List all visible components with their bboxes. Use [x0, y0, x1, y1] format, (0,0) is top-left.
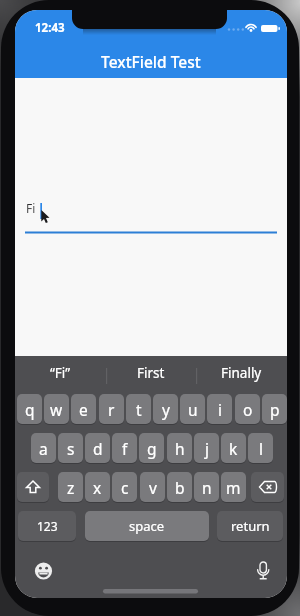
staticText: q: [25, 399, 35, 420]
staticText: l: [259, 438, 263, 459]
button[interactable]: q: [17, 394, 42, 424]
button[interactable]: m: [221, 472, 246, 502]
button[interactable]: 123: [18, 511, 76, 541]
staticText: z: [67, 477, 75, 498]
button[interactable]: space: [85, 511, 209, 541]
staticText: 123: [37, 518, 58, 534]
button[interactable]: Fi: [15, 190, 287, 240]
staticText: a: [39, 438, 48, 459]
staticText: TextField Test: [101, 51, 201, 72]
button[interactable]: h: [167, 433, 192, 463]
staticText: 12:43: [35, 20, 65, 36]
button[interactable]: t: [126, 394, 151, 424]
button[interactable]: c: [112, 472, 137, 502]
staticText: j: [205, 438, 209, 459]
staticText: w: [50, 399, 63, 420]
button[interactable]: r: [99, 394, 124, 424]
button[interactable]: w: [44, 394, 69, 424]
staticText: b: [175, 477, 185, 498]
staticText: p: [270, 399, 280, 420]
staticText: c: [121, 477, 129, 498]
staticText: i: [218, 399, 222, 420]
button[interactable]: y: [153, 394, 178, 424]
button[interactable]: v: [140, 472, 165, 502]
button[interactable]: d: [85, 433, 110, 463]
staticText: “Fi”: [50, 364, 71, 382]
button[interactable]: “Fi”: [15, 356, 106, 390]
button[interactable]: j: [194, 433, 219, 463]
staticText: k: [229, 438, 238, 459]
staticText: r: [108, 399, 115, 420]
button[interactable]: a: [31, 433, 56, 463]
button[interactable]: Finally: [196, 356, 287, 390]
staticText: h: [175, 438, 185, 459]
staticText: f: [122, 438, 128, 459]
staticText: space: [129, 517, 165, 535]
button[interactable]: i: [207, 394, 232, 424]
button[interactable]: b: [167, 472, 192, 502]
button[interactable]: [251, 472, 284, 502]
staticText: d: [93, 438, 103, 459]
button[interactable]: f: [112, 433, 137, 463]
button[interactable]: p: [262, 394, 287, 424]
staticText: Finally: [221, 364, 262, 382]
button[interactable]: return: [217, 511, 283, 541]
button[interactable]: l: [248, 433, 273, 463]
staticText: x: [93, 477, 102, 498]
button[interactable]: n: [194, 472, 219, 502]
button[interactable]: o: [235, 394, 260, 424]
staticText: v: [149, 477, 157, 498]
button[interactable]: x: [85, 472, 110, 502]
staticText: e: [79, 399, 88, 420]
staticText: u: [188, 399, 198, 420]
button[interactable]: s: [58, 433, 83, 463]
button[interactable]: First: [106, 356, 196, 390]
button[interactable]: [17, 472, 49, 502]
staticText: return: [231, 517, 270, 535]
button[interactable]: e: [71, 394, 96, 424]
staticText: g: [147, 438, 157, 459]
button[interactable]: z: [58, 472, 83, 502]
staticText: Fi: [26, 200, 36, 216]
button[interactable]: k: [221, 433, 246, 463]
button[interactable]: u: [180, 394, 205, 424]
staticText: t: [136, 399, 142, 420]
staticText: m: [226, 477, 241, 498]
staticText: s: [67, 438, 75, 459]
button[interactable]: g: [139, 433, 164, 463]
staticText: o: [243, 399, 253, 420]
staticText: First: [137, 364, 165, 382]
staticText: y: [162, 399, 170, 420]
staticText: n: [202, 477, 212, 498]
